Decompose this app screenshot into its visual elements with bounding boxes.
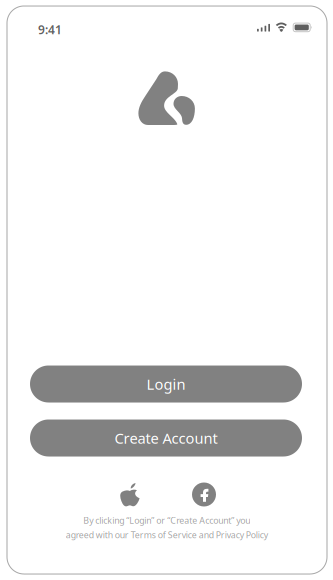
button[interactable]: Continue with Facebook (192, 482, 216, 506)
button[interactable]: Create Account (30, 419, 302, 456)
staticText: By clicking “Login” or “Create Account” … (65, 514, 267, 541)
staticText: 9:41 (38, 21, 62, 38)
staticText: Login (146, 374, 185, 394)
button[interactable]: Continue with Apple (120, 483, 140, 507)
staticText: Create Account (114, 428, 217, 448)
button[interactable]: Login (30, 365, 302, 402)
